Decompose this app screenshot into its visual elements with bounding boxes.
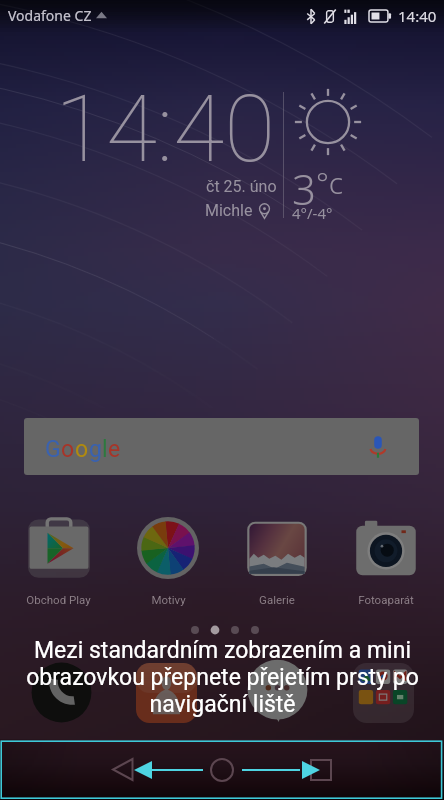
staticText: G <box>45 436 61 463</box>
staticText: Michle <box>205 201 253 220</box>
button[interactable]: Fotoaparát <box>342 517 430 613</box>
other: Voice search <box>369 435 387 459</box>
button[interactable]: Browser <box>136 663 197 723</box>
staticText: obrazovkou přepnete přejetím prsty po <box>26 664 419 691</box>
staticText: l <box>102 436 108 463</box>
staticText: 3 <box>292 160 316 217</box>
button[interactable]: Motivy <box>124 517 212 613</box>
staticText: 14:40 <box>55 75 276 184</box>
staticText: Galerie <box>259 593 295 606</box>
button[interactable]: Home <box>200 747 244 791</box>
staticText: Motivy <box>151 593 186 606</box>
staticText: navigační liště <box>149 691 296 718</box>
button[interactable]: Galerie <box>233 517 321 613</box>
button[interactable]: Recent apps <box>299 747 343 791</box>
staticText: Obchod Play <box>26 593 91 606</box>
staticText: o <box>61 436 75 463</box>
button[interactable]: Apps folder <box>353 663 414 723</box>
staticText: čt 25. úno <box>206 177 277 196</box>
staticText: Mezi standardním zobrazením a mini <box>34 637 411 664</box>
staticText: Vodafone CZ <box>8 6 92 25</box>
staticText: Fotoaparát <box>358 593 414 606</box>
button[interactable]: Phone <box>31 662 92 722</box>
button[interactable]: Obchod Play <box>14 517 102 613</box>
button[interactable]: Back <box>101 747 145 791</box>
staticText: 14:40 <box>398 6 437 26</box>
button[interactable]: G <box>24 418 419 475</box>
staticText: °c <box>316 162 344 203</box>
staticText: g <box>89 436 102 463</box>
staticText: o <box>75 436 89 463</box>
button[interactable]: Messages <box>247 661 308 721</box>
staticText: 4°/-4° <box>292 203 333 223</box>
staticText: e <box>108 436 121 463</box>
